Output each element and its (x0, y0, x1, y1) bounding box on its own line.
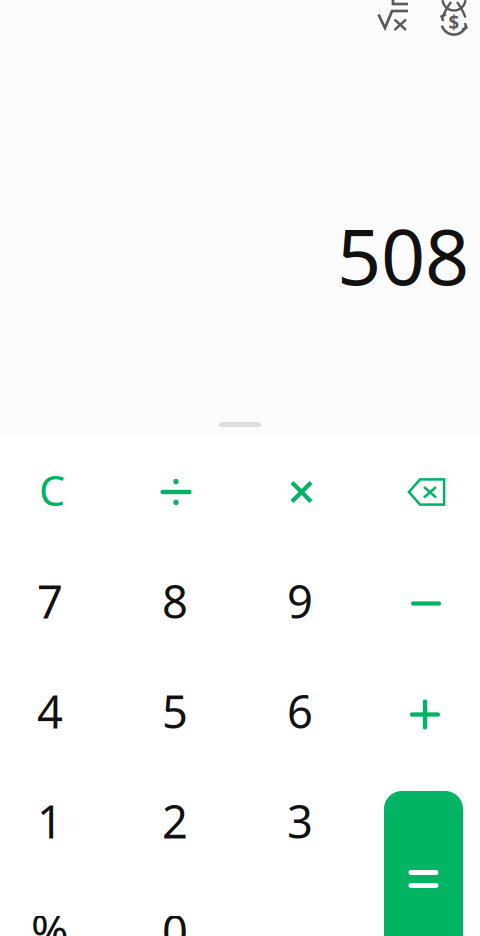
button[interactable]: 8 (119, 549, 231, 653)
button[interactable]: Delete (369, 438, 480, 542)
button[interactable]: C (0, 438, 106, 542)
button[interactable]: 0 (119, 879, 231, 936)
staticText: 6 (287, 681, 313, 741)
staticText: 5 (162, 681, 188, 741)
staticText: 8 (162, 571, 188, 631)
button[interactable]: Currency converter (440, 8, 468, 36)
staticText: C (39, 463, 65, 517)
staticText: 2 (162, 791, 188, 851)
button[interactable]: % (0, 879, 106, 936)
button[interactable]: 3 (244, 769, 356, 873)
staticText: 3 (287, 791, 313, 851)
button[interactable]: Multiply (244, 438, 356, 542)
button[interactable]: Subtract (369, 549, 480, 653)
staticText: 508 (337, 204, 469, 306)
staticText: 4 (37, 681, 63, 741)
staticText: % (31, 901, 69, 936)
button[interactable]: 9 (244, 549, 356, 653)
button[interactable]: Equals (384, 791, 463, 936)
button[interactable]: 2 (119, 769, 231, 873)
staticText: 7 (37, 571, 63, 631)
button[interactable]: Scientific functions (376, 0, 408, 32)
button[interactable]: 7 (0, 549, 106, 653)
button[interactable]: Divide (119, 438, 231, 542)
button[interactable]: 4 (0, 659, 106, 763)
staticText: $ (448, 10, 459, 34)
staticText: 0 (162, 901, 188, 936)
button[interactable]: 1 (0, 769, 106, 873)
button[interactable]: Add (369, 659, 480, 763)
staticText: 1 (37, 791, 63, 851)
staticText: 9 (287, 571, 313, 631)
button[interactable]: 5 (119, 659, 231, 763)
button[interactable]: 6 (244, 659, 356, 763)
